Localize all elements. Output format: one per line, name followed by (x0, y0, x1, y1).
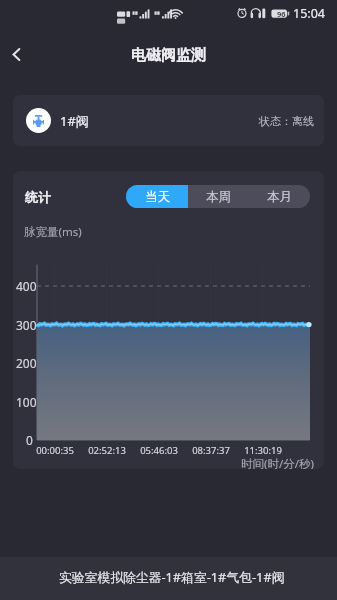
button[interactable]: Back (0, 32, 32, 76)
staticText: 200 (16, 355, 37, 371)
button[interactable]: 本月 (249, 185, 310, 208)
staticText: 实验室模拟除尘器-1#箱室-1#气包-1#阀 (59, 568, 285, 585)
button[interactable]: 1#阀 (13, 95, 324, 146)
staticText: 当天 (145, 189, 170, 205)
staticText: 15:04 (293, 5, 325, 22)
staticText: 1#阀 (60, 112, 89, 130)
staticText: 00:00:35 (36, 444, 74, 457)
staticText: 05:46:03 (140, 444, 178, 457)
staticText: 0 (26, 432, 33, 448)
staticText: 300 (16, 317, 37, 333)
staticText: 本月 (267, 189, 292, 205)
staticText: 400 (16, 278, 37, 294)
staticText: 本周 (206, 189, 231, 205)
staticText: 脉宽量(ms) (24, 224, 82, 240)
staticText: 电磁阀监测 (131, 46, 206, 65)
staticText: 统计 (25, 189, 51, 205)
staticText: 时间(时/分/秒) (241, 456, 314, 469)
button[interactable]: 当天 (126, 185, 188, 208)
staticText: 96 (277, 9, 286, 19)
button[interactable]: 本周 (188, 185, 249, 208)
staticText: 100 (16, 394, 37, 410)
staticText: 02:52:13 (88, 444, 126, 457)
staticText: 状态：离线 (259, 114, 314, 128)
staticText: 11:30:19 (244, 444, 282, 457)
staticText: 08:37:37 (192, 444, 230, 457)
